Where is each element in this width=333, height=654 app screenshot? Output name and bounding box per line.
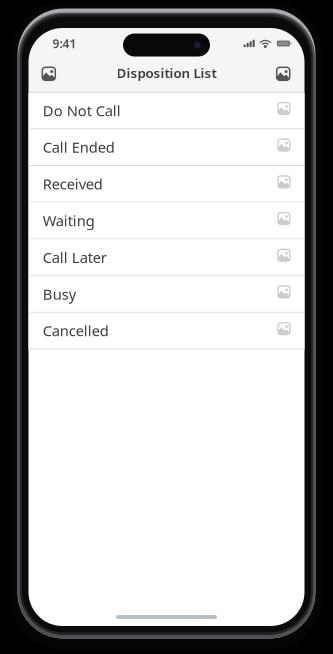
staticText: Call Ended — [43, 137, 115, 157]
button[interactable]: Received — [28, 166, 304, 203]
button[interactable]: Image — [36, 60, 62, 86]
staticText: 9:41 — [52, 35, 76, 51]
staticText: Waiting — [43, 211, 95, 230]
staticText: Busy — [43, 284, 76, 304]
button[interactable]: Do Not Call — [28, 93, 304, 129]
staticText: Call Later — [43, 247, 107, 267]
button[interactable]: Image — [270, 60, 296, 86]
staticText: Do Not Call — [43, 101, 121, 120]
button[interactable]: Cancelled — [28, 313, 304, 349]
button[interactable]: Waiting — [28, 203, 304, 239]
staticText: Cancelled — [43, 321, 109, 340]
button[interactable]: Call Ended — [28, 129, 304, 166]
button[interactable]: Call Later — [28, 239, 304, 276]
button[interactable]: Busy — [28, 276, 304, 313]
staticText: Disposition List — [116, 64, 216, 82]
staticText: Received — [43, 174, 103, 194]
